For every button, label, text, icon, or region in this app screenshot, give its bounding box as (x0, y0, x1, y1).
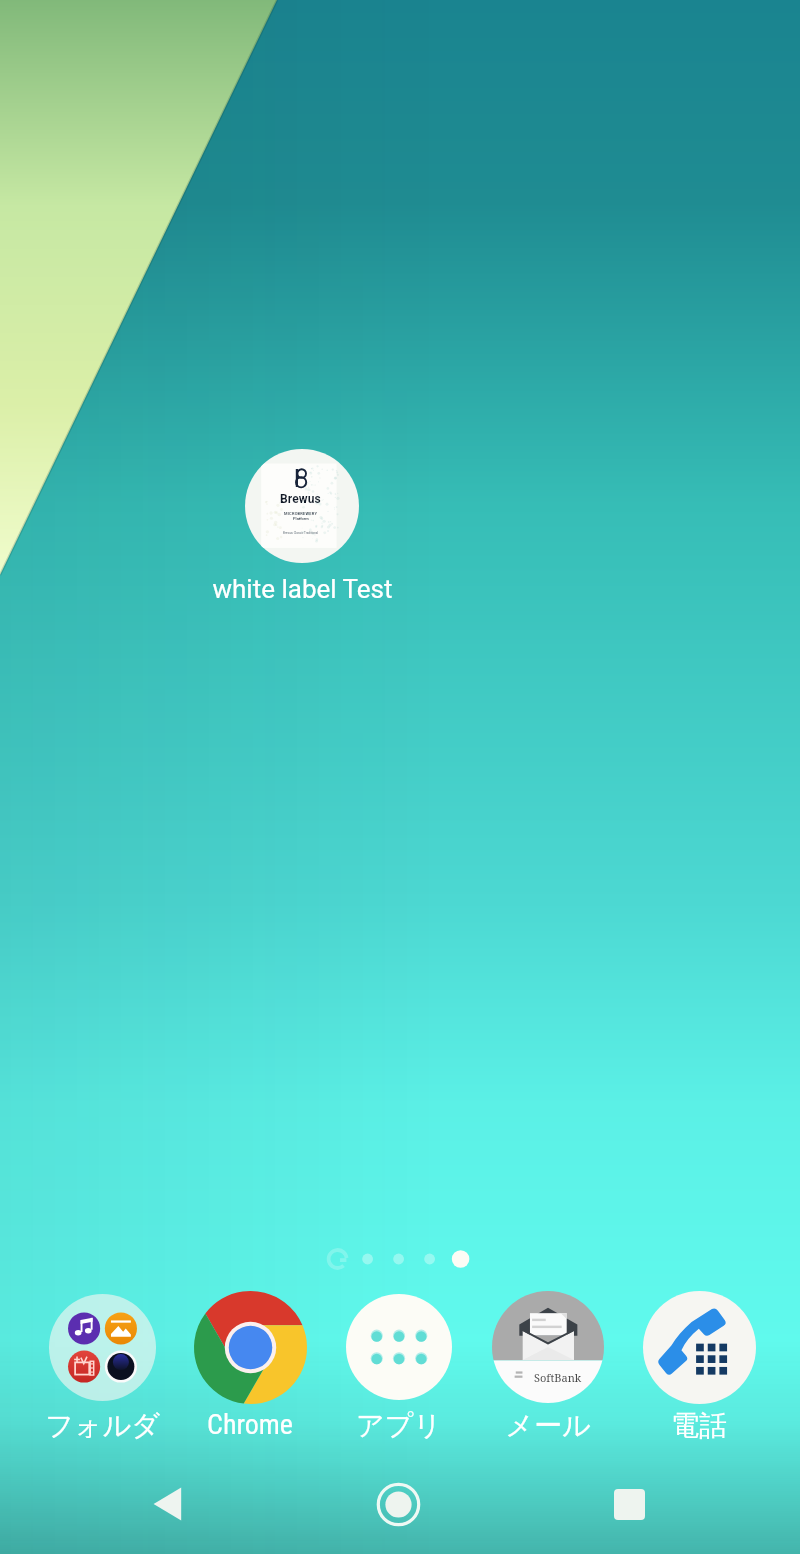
button[interactable]: Brewus (189, 449, 415, 604)
button[interactable]: Home (348, 1454, 448, 1554)
staticText: フォルダ (45, 1408, 160, 1443)
button[interactable]: 電話 (626, 1290, 772, 1443)
staticText: Brewus (280, 492, 321, 506)
button[interactable]: SoftBank (475, 1290, 621, 1443)
staticText: メール (505, 1408, 591, 1443)
staticText: SoftBank (534, 1370, 582, 1385)
button[interactable]: Back (118, 1454, 218, 1554)
button[interactable]: アプリ (326, 1290, 472, 1443)
staticText: white label Test (212, 574, 393, 604)
staticText: 電話 (671, 1408, 727, 1443)
button[interactable]: Chrome (177, 1290, 323, 1441)
staticText: Chrome (207, 1408, 293, 1441)
staticText: Platform (293, 516, 309, 521)
staticText: アプリ (356, 1408, 442, 1443)
button[interactable]: Recents (579, 1454, 679, 1554)
staticText: Brewus Classic Traditional (283, 531, 319, 535)
staticText: MICROBREWERY (284, 511, 318, 516)
button[interactable]: フォルダ (29, 1290, 175, 1443)
